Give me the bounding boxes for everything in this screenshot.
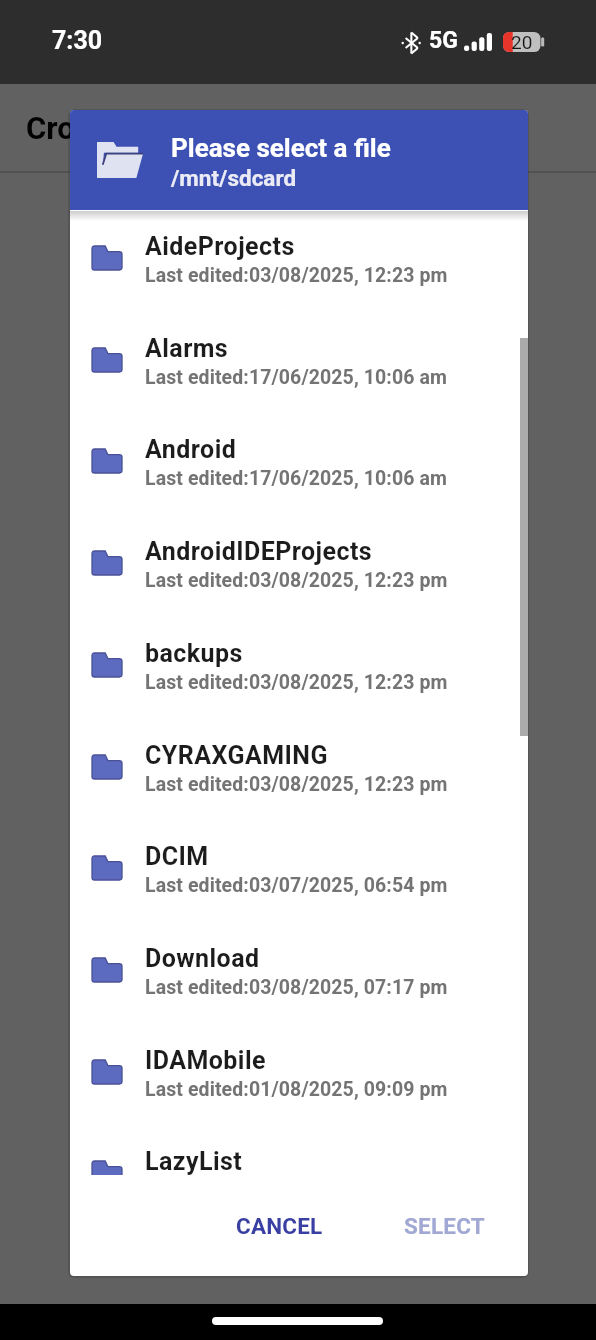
staticText: Last edited:03/08/2025, 12:23 pm bbox=[145, 569, 448, 592]
staticText: Last edited:03/08/2025, 12:23 pm bbox=[145, 671, 448, 694]
staticText: SELECT bbox=[404, 1213, 485, 1239]
button[interactable]: CANCEL bbox=[220, 1201, 339, 1251]
button[interactable]: Alarms bbox=[70, 312, 528, 414]
staticText: 20 bbox=[511, 31, 533, 51]
staticText: Cro bbox=[26, 110, 75, 146]
staticText: DCIM bbox=[145, 842, 209, 871]
staticText: /mnt/sdcard bbox=[171, 165, 297, 191]
button[interactable]: SELECT bbox=[388, 1201, 501, 1251]
staticText: AndroidIDEProjects bbox=[145, 537, 373, 566]
button[interactable]: AideProjects bbox=[70, 210, 528, 312]
staticText: AideProjects bbox=[145, 232, 295, 261]
button[interactable]: LazyList bbox=[70, 1125, 528, 1175]
staticText: CYRAXGAMING bbox=[145, 741, 328, 770]
staticText: 7:30 bbox=[52, 26, 103, 55]
staticText: 5G bbox=[429, 27, 458, 54]
staticText: Last edited:01/08/2025, 09:09 pm bbox=[145, 1078, 448, 1101]
button[interactable]: Android bbox=[70, 413, 528, 515]
staticText: Last edited:17/06/2025, 10:06 am bbox=[145, 467, 447, 490]
button[interactable]: CYRAXGAMING bbox=[70, 719, 528, 821]
staticText: Last edited:03/07/2025, 06:54 pm bbox=[145, 874, 448, 897]
button[interactable]: AndroidIDEProjects bbox=[70, 515, 528, 617]
staticText: Android bbox=[145, 435, 237, 464]
staticText: CANCEL bbox=[236, 1213, 323, 1239]
button[interactable]: Download bbox=[70, 922, 528, 1024]
staticText: Last edited:17/06/2025, 10:06 am bbox=[145, 366, 447, 389]
staticText: Alarms bbox=[145, 334, 229, 363]
button[interactable]: DCIM bbox=[70, 820, 528, 922]
button[interactable]: backups bbox=[70, 617, 528, 719]
staticText: Please select a file bbox=[171, 133, 391, 163]
staticText: LazyList bbox=[145, 1147, 243, 1175]
staticText: backups bbox=[145, 639, 243, 668]
staticText: Last edited:03/08/2025, 07:17 pm bbox=[145, 976, 448, 999]
staticText: Last edited:03/08/2025, 12:23 pm bbox=[145, 264, 448, 287]
staticText: IDAMobile bbox=[145, 1046, 266, 1075]
button[interactable]: IDAMobile bbox=[70, 1024, 528, 1126]
staticText: Last edited:03/08/2025, 12:23 pm bbox=[145, 773, 448, 796]
staticText: Download bbox=[145, 944, 260, 973]
